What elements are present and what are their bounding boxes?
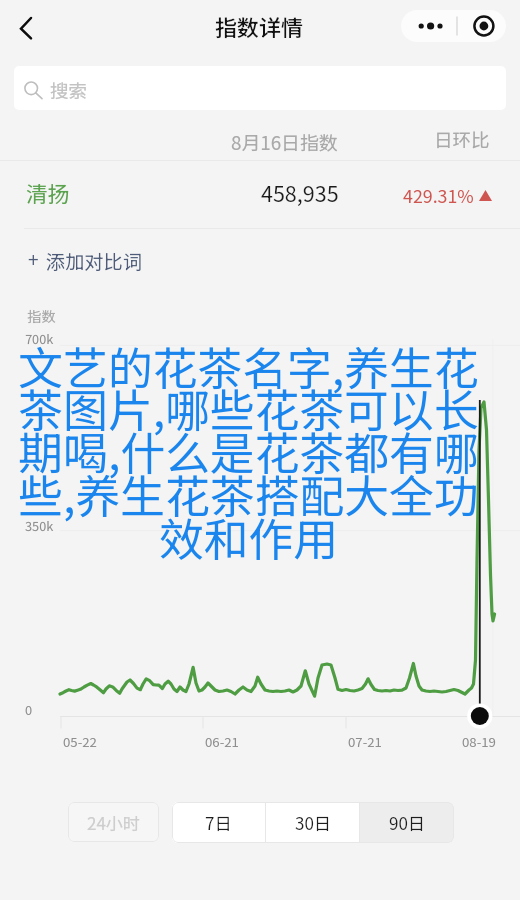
staticText: 90日 bbox=[389, 810, 425, 835]
staticText: 700k bbox=[25, 329, 54, 348]
button[interactable]: Back bbox=[10, 16, 36, 42]
button[interactable]: Menu and close bbox=[401, 10, 506, 42]
staticText: + bbox=[28, 245, 39, 273]
staticText: 7日 bbox=[205, 810, 232, 835]
staticText: 清扬 bbox=[26, 177, 70, 208]
button[interactable]: + bbox=[0, 229, 520, 286]
staticText: 搜索 bbox=[50, 76, 88, 103]
staticText: 8月16日指数 bbox=[231, 128, 338, 155]
button[interactable]: 7日 bbox=[172, 802, 265, 843]
staticText: 350k bbox=[25, 516, 54, 535]
button[interactable]: 清扬 bbox=[0, 161, 520, 228]
staticText: 文艺的花茶名字,养生花茶图片,哪些花茶可以长期喝,什么是花茶都有哪些,养生花茶搭… bbox=[16, 333, 481, 569]
staticText: 08-19 bbox=[462, 732, 496, 751]
button[interactable]: 30日 bbox=[266, 802, 359, 843]
staticText: 日环比 bbox=[434, 126, 490, 153]
staticText: 429.31% bbox=[403, 182, 474, 208]
button[interactable]: 搜索 bbox=[14, 66, 506, 110]
staticText: 05-22 bbox=[63, 732, 97, 751]
staticText: 指数详情 bbox=[215, 10, 304, 42]
button[interactable]: 90日 bbox=[360, 802, 454, 843]
staticText: 458,935 bbox=[261, 177, 339, 208]
staticText: 06-21 bbox=[205, 732, 239, 751]
staticText: 添加对比词 bbox=[46, 247, 142, 275]
button[interactable]: 24小时 bbox=[68, 802, 159, 842]
staticText: 24小时 bbox=[87, 810, 140, 835]
staticText: 07-21 bbox=[348, 732, 382, 751]
staticText: 0 bbox=[25, 700, 33, 719]
staticText: 指数 bbox=[27, 306, 56, 327]
staticText: 30日 bbox=[295, 810, 331, 835]
